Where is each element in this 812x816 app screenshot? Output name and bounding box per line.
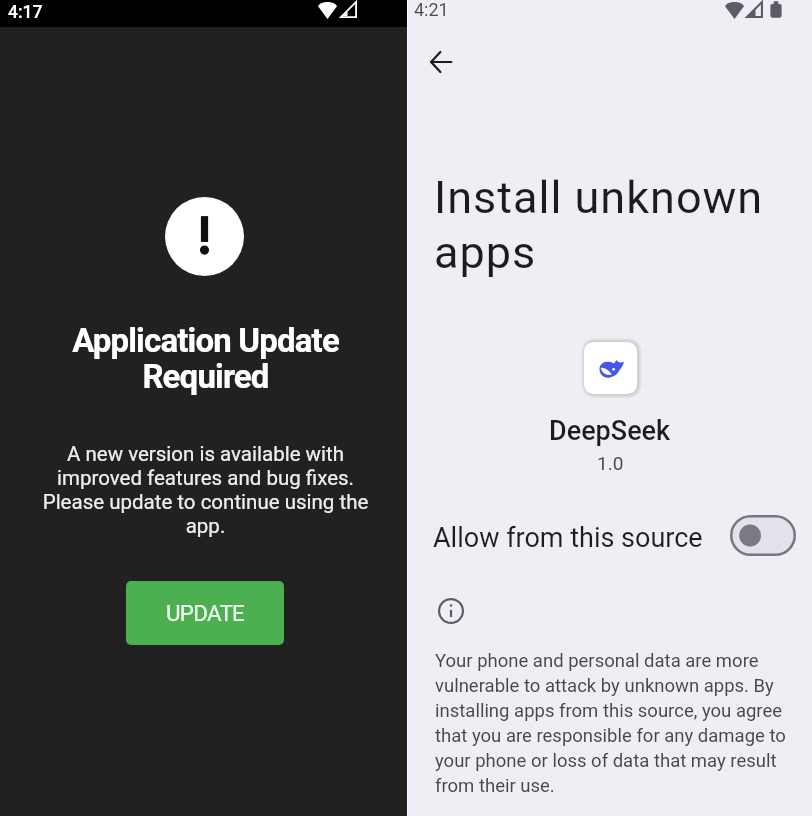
staticText: 1.0 bbox=[597, 452, 624, 474]
button[interactable]: UPDATE bbox=[126, 581, 284, 645]
button[interactable]: Allow from this source bbox=[730, 515, 796, 556]
staticText: Install unknown apps bbox=[434, 171, 794, 279]
staticText: A new version is available with improved… bbox=[26, 442, 385, 538]
staticText: Application Update Required bbox=[26, 321, 385, 396]
staticText: 4:17 bbox=[8, 2, 43, 23]
staticText: UPDATE bbox=[166, 600, 245, 626]
button[interactable]: Back bbox=[417, 38, 465, 86]
staticText: Your phone and personal data are more vu… bbox=[435, 650, 793, 796]
button[interactable]: Allow from this source bbox=[408, 514, 812, 561]
staticText: Allow from this source bbox=[433, 522, 703, 554]
staticText: 4:21 bbox=[414, 0, 449, 20]
staticText: DeepSeek bbox=[549, 415, 671, 447]
other: Information bbox=[436, 596, 466, 626]
